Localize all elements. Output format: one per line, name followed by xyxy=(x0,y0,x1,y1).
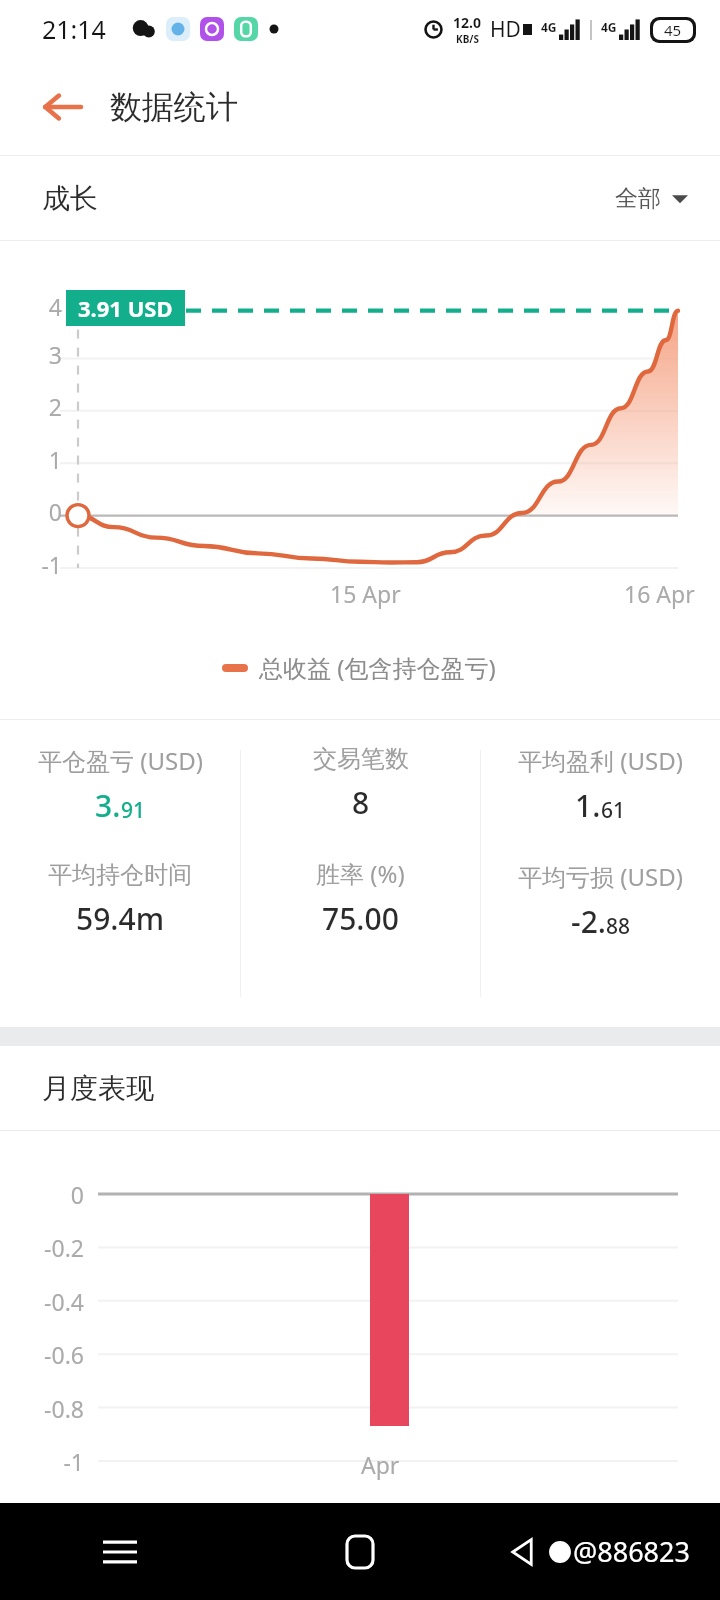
button[interactable]: 交易笔数 xyxy=(241,720,480,1027)
staticText: 4 xyxy=(0,291,62,322)
staticText: 总收益 (包含持仓盈亏) xyxy=(259,651,496,684)
staticText: HD xyxy=(490,15,521,44)
staticText: 数据统计 xyxy=(110,87,238,127)
staticText: 月度表现 xyxy=(42,1071,154,1106)
staticText: 3.91 USD xyxy=(78,293,173,323)
staticText: 平均持仓时间 xyxy=(48,860,192,890)
button[interactable]: Recents xyxy=(0,1503,240,1600)
button[interactable]: 平仓盈亏 (USD) xyxy=(0,720,240,1027)
staticText: 1. xyxy=(575,785,601,826)
staticText: -0.8 xyxy=(0,1393,84,1424)
staticText: -1 xyxy=(0,1446,84,1477)
staticText: 88 xyxy=(606,912,631,941)
staticText: 胜率 (%) xyxy=(316,857,405,890)
staticText: KB/S xyxy=(456,32,479,46)
staticText: 成长 xyxy=(42,181,98,216)
staticText: 91 xyxy=(121,796,146,825)
staticText: 8 xyxy=(352,782,370,823)
staticText: 0 xyxy=(0,1179,84,1210)
staticText: 15 Apr xyxy=(330,578,401,609)
staticText: 45 xyxy=(664,20,682,40)
staticText: @886823 xyxy=(573,1533,690,1570)
staticText: -1 xyxy=(0,549,62,580)
button[interactable]: 全部 xyxy=(607,176,696,221)
staticText: 0 xyxy=(0,496,62,527)
staticText: 75.00 xyxy=(322,898,399,939)
staticText: 4G xyxy=(601,19,617,35)
staticText: 交易笔数 xyxy=(313,744,409,774)
staticText: 平均亏损 (USD) xyxy=(518,860,683,893)
staticText: 平均盈利 (USD) xyxy=(518,744,683,777)
staticText: -0.2 xyxy=(0,1232,84,1263)
button[interactable]: 平均盈利 (USD) xyxy=(481,720,720,1027)
button[interactable]: Home xyxy=(240,1503,480,1600)
staticText: Apr xyxy=(361,1449,400,1480)
staticText: 16 Apr xyxy=(624,578,695,609)
staticText: 1 xyxy=(0,444,62,475)
staticText: 平仓盈亏 (USD) xyxy=(38,744,203,777)
button[interactable]: Back xyxy=(34,79,90,135)
staticText: 12.0 xyxy=(453,13,481,32)
staticText: 4G xyxy=(541,19,557,35)
staticText: -0.6 xyxy=(0,1339,84,1370)
staticText: 61 xyxy=(601,796,626,825)
staticText: 59.4m xyxy=(76,898,165,939)
staticText: 21:14 xyxy=(42,12,106,46)
staticText: -0.4 xyxy=(0,1286,84,1317)
staticText: 2 xyxy=(0,391,62,422)
button[interactable]: Back xyxy=(480,1503,720,1600)
staticText: 3. xyxy=(95,785,121,826)
staticText: 3 xyxy=(0,339,62,370)
staticText: -2. xyxy=(571,901,606,942)
staticText: 全部 xyxy=(615,184,661,213)
